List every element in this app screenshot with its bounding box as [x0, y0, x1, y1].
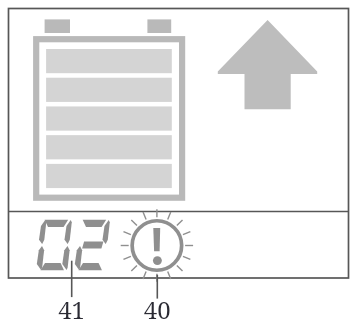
button[interactable]: Warning indicator: [120, 209, 194, 283]
button[interactable]: Battery stack: [33, 14, 186, 206]
button[interactable]: Charging up arrow: [214, 16, 320, 113]
button[interactable]: Diagram: [0, 0, 356, 327]
button[interactable]: Status code 02: [36, 216, 112, 274]
